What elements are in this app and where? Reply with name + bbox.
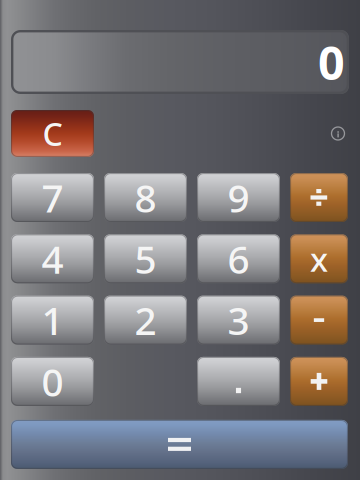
- button[interactable]: Clear: [11, 110, 94, 157]
- staticText: 8: [134, 172, 156, 223]
- staticText: 6: [227, 233, 249, 284]
- button[interactable]: 1: [11, 296, 94, 345]
- staticText: 4: [41, 233, 63, 284]
- button[interactable]: Plus: [290, 357, 348, 406]
- button[interactable]: Info: [327, 122, 349, 144]
- button[interactable]: Multiply: [290, 234, 348, 283]
- button[interactable]: 4: [11, 234, 94, 283]
- button[interactable]: 2: [104, 296, 187, 345]
- staticText: 3: [227, 294, 249, 346]
- button[interactable]: 6: [197, 234, 280, 283]
- button[interactable]: 0: [11, 357, 94, 406]
- staticText: 0: [318, 31, 345, 93]
- button[interactable]: 9: [197, 173, 280, 222]
- staticText: 2: [134, 294, 156, 346]
- staticText: C: [42, 112, 62, 155]
- button[interactable]: Decimal point: [197, 357, 280, 406]
- button[interactable]: 7: [11, 173, 94, 222]
- staticText: 9: [227, 172, 249, 223]
- staticText: 0: [41, 356, 63, 407]
- staticText: x: [310, 237, 328, 281]
- button[interactable]: Divide: [290, 173, 348, 222]
- button[interactable]: 3: [197, 296, 280, 345]
- staticText: 7: [41, 172, 63, 223]
- staticText: 1: [41, 294, 63, 346]
- button[interactable]: 5: [104, 234, 187, 283]
- button[interactable]: Minus: [290, 296, 348, 345]
- button[interactable]: 8: [104, 173, 187, 222]
- button[interactable]: Equals: [11, 420, 348, 469]
- staticText: 5: [134, 233, 156, 284]
